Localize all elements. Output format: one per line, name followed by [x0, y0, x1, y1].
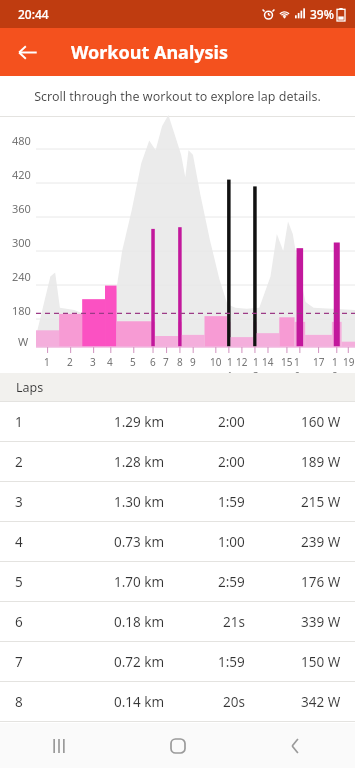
staticText: 6: [15, 613, 23, 631]
staticText: 420: [12, 167, 31, 182]
button[interactable]: Recents: [35, 723, 83, 768]
staticText: 3: [15, 493, 23, 511]
staticText: 20:44: [18, 6, 49, 22]
staticText: 1: [15, 413, 23, 431]
staticText: 215 W: [301, 493, 341, 511]
staticText: 342 W: [301, 693, 341, 711]
staticText: 160 W: [301, 413, 341, 431]
button[interactable]: 7: [0, 642, 355, 681]
staticText: 339 W: [301, 613, 341, 631]
staticText: 0.72 km: [114, 653, 165, 671]
staticText: 2: [67, 355, 73, 369]
staticText: 300: [12, 235, 31, 250]
staticText: 16: [294, 355, 305, 383]
staticText: 1:59: [218, 493, 245, 511]
staticText: 7: [163, 355, 169, 369]
staticText: 0.18 km: [114, 613, 165, 631]
button[interactable]: 5: [0, 562, 355, 601]
button[interactable]: Back: [272, 723, 320, 768]
staticText: 239 W: [301, 533, 341, 551]
staticText: Scroll through the workout to explore la…: [34, 88, 321, 105]
staticText: 2: [15, 453, 23, 471]
staticText: 240: [12, 269, 31, 284]
staticText: 7: [15, 653, 23, 671]
staticText: 8: [15, 693, 23, 711]
button[interactable]: 2: [0, 442, 355, 481]
staticText: 15: [281, 355, 293, 369]
staticText: 20s: [223, 693, 245, 711]
staticText: 189 W: [301, 453, 341, 471]
staticText: 6: [150, 355, 154, 369]
staticText: 150 W: [301, 653, 341, 671]
staticText: 1:00: [218, 533, 245, 551]
staticText: 1:59: [218, 653, 245, 671]
staticText: W: [18, 334, 29, 349]
staticText: 3: [90, 355, 96, 369]
staticText: 180: [12, 303, 31, 318]
button[interactable]: 4: [0, 522, 355, 561]
staticText: 1: [44, 355, 50, 369]
staticText: 2:00: [218, 453, 245, 471]
button[interactable]: 8: [0, 682, 355, 721]
staticText: 11: [227, 355, 230, 383]
staticText: 10: [210, 355, 222, 369]
staticText: 9: [190, 355, 196, 369]
button[interactable]: 1: [0, 402, 355, 441]
staticText: 360: [12, 201, 31, 216]
staticText: 39%: [310, 6, 334, 22]
staticText: 4: [15, 533, 23, 551]
staticText: 5: [130, 355, 136, 369]
staticText: 17: [313, 355, 325, 369]
staticText: 2:59: [218, 573, 245, 591]
staticText: 12: [236, 355, 248, 369]
staticText: 19: [343, 355, 355, 369]
staticText: 2:00: [218, 413, 245, 431]
staticText: 18: [332, 355, 342, 383]
staticText: 5: [15, 573, 23, 591]
staticText: 4: [107, 355, 113, 369]
staticText: 1.28 km: [114, 453, 165, 471]
button[interactable]: Back: [6, 31, 48, 73]
staticText: 21s: [223, 613, 245, 631]
staticText: 480: [12, 133, 31, 148]
staticText: Workout Analysis: [71, 40, 228, 65]
staticText: 176 W: [301, 573, 341, 591]
staticText: 13: [253, 355, 256, 383]
staticText: 1.70 km: [114, 573, 165, 591]
staticText: 1.30 km: [114, 493, 165, 511]
staticText: Laps: [16, 379, 44, 396]
button[interactable]: 3: [0, 482, 355, 521]
staticText: 0.73 km: [114, 533, 165, 551]
staticText: 1.29 km: [114, 413, 165, 431]
button[interactable]: Home: [154, 723, 202, 768]
staticText: 14: [262, 355, 274, 369]
staticText: 0.14 km: [114, 693, 165, 711]
staticText: 8: [177, 355, 181, 369]
button[interactable]: 6: [0, 602, 355, 641]
